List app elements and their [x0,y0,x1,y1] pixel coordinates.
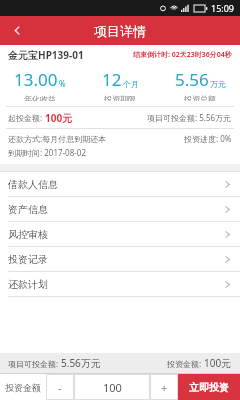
button[interactable]: 立即投资 [178,374,240,400]
staticText: 投资总额 [184,94,216,101]
staticText: 立即投资 [189,381,229,394]
button[interactable]: 还款计划 [0,272,240,296]
staticText: + [161,380,168,395]
staticText: 金元宝HP139-01 [8,48,84,62]
staticText: 借款人信息 [8,178,58,191]
staticText: 5.56万元 [61,356,101,370]
button[interactable]: 投资记录 [0,247,240,271]
staticText: 5.56 [175,68,209,91]
staticText: 还款计划 [8,278,48,291]
staticText: 到期时间: 2017-08-02 [8,147,86,158]
staticText: 项目详情 [94,23,146,39]
staticText: 13.00 [14,68,58,91]
staticText: 起投金额: [8,112,45,123]
button[interactable]: 风控审核 [0,222,240,246]
staticText: 投资进度: 0% [184,133,232,144]
staticText: 12 [102,68,122,91]
button[interactable]: Back [0,16,34,45]
button[interactable]: Decrease [46,374,74,400]
button[interactable]: Increase [150,374,178,400]
staticText: 投资金额 [5,382,41,393]
staticText: 万元 [210,79,226,89]
button[interactable]: 借款人信息 [0,172,240,196]
staticText: 还款方式:每月付息到期还本 [8,133,107,144]
staticText: 100 [103,380,122,395]
staticText: - [58,380,62,395]
staticText: 个月 [123,79,139,89]
button[interactable]: 资产信息 [0,197,240,221]
staticText: 项目可投金额: 5.56万元 [147,112,232,123]
staticText: % [59,78,66,89]
staticText: 投资金额: [167,358,204,369]
staticText: 投资期限 [104,94,136,101]
staticText: 100元 [45,111,73,125]
staticText: 结束倒计时: 02天23时36分04秒 [133,50,232,60]
staticText: 年化收益 [24,94,56,101]
button[interactable]: 100 [74,374,150,400]
staticText: 项目可投金额: [8,358,61,369]
staticText: 风控审核 [8,228,48,241]
staticText: 100元 [204,356,232,370]
staticText: 投资记录 [8,253,48,266]
staticText: 资产信息 [8,203,48,216]
staticText: 15:09 [211,2,235,14]
